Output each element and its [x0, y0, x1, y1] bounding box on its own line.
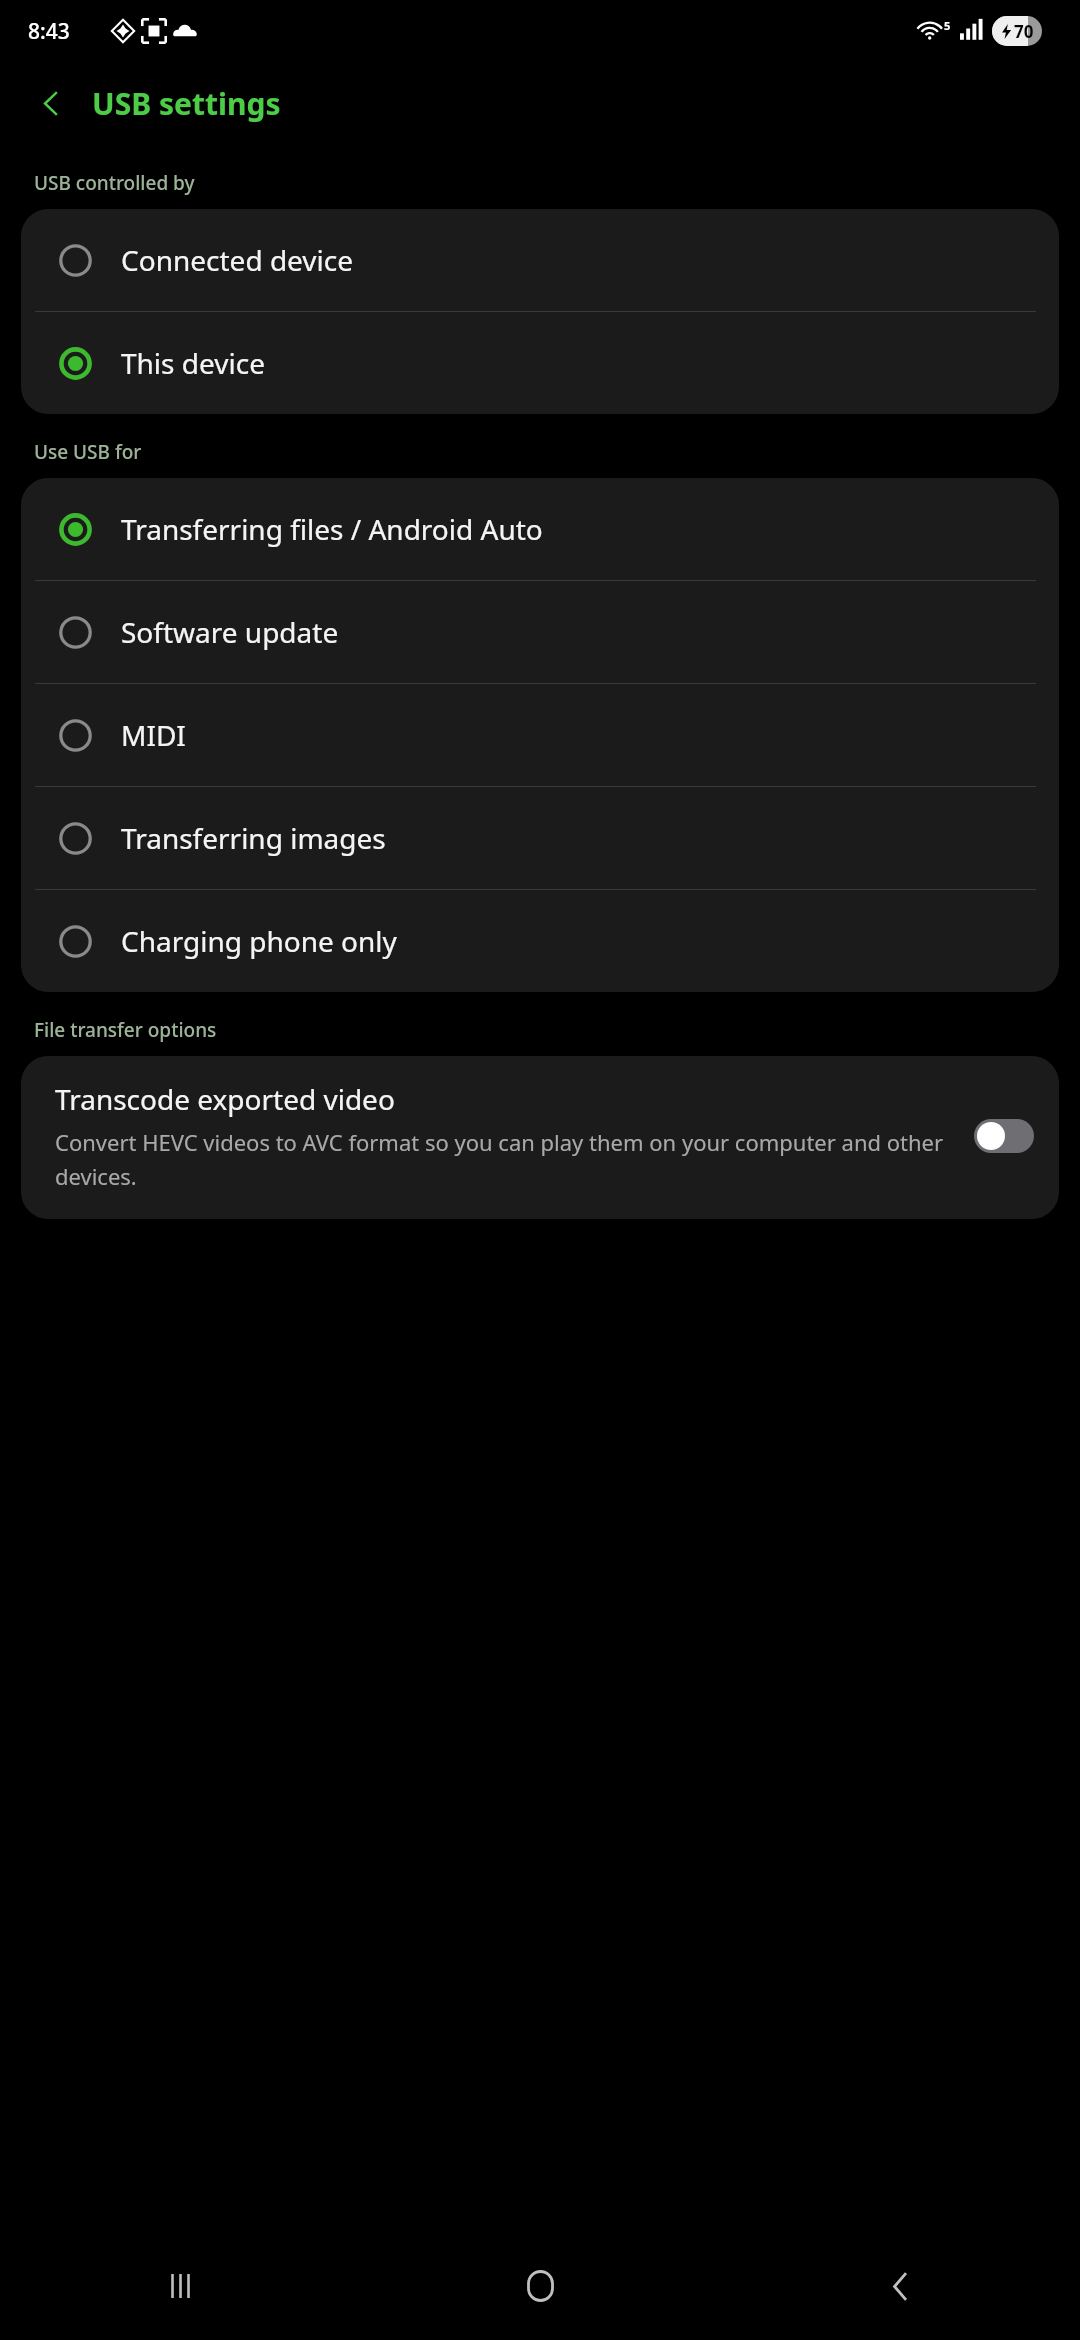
button[interactable]: Recent apps — [0, 2232, 360, 2340]
staticText: File transfer options — [34, 1017, 217, 1043]
button[interactable]: Connected device — [21, 209, 1059, 311]
staticText: Connected device — [121, 241, 354, 279]
button[interactable]: Transcode exported video — [974, 1119, 1034, 1153]
staticText: 8:43 — [28, 17, 70, 46]
staticText: USB controlled by — [34, 170, 195, 196]
staticText: Transcode exported video — [55, 1080, 395, 1118]
button[interactable]: Transcode exported video — [21, 1056, 1059, 1219]
button[interactable]: This device — [21, 312, 1059, 414]
staticText: 5 — [944, 18, 951, 33]
staticText: Charging phone only — [121, 922, 397, 960]
button[interactable]: Back — [22, 74, 80, 132]
staticText: Software update — [121, 613, 339, 651]
staticText: Transferring images — [121, 819, 386, 857]
staticText: Transferring files / Android Auto — [121, 510, 543, 548]
staticText: USB settings — [92, 83, 281, 124]
button[interactable]: Software update — [21, 581, 1059, 683]
staticText: MIDI — [121, 716, 186, 754]
button[interactable]: Home — [360, 2232, 720, 2340]
staticText: Use USB for — [34, 439, 142, 465]
button[interactable]: MIDI — [21, 684, 1059, 786]
button[interactable]: Charging phone only — [21, 890, 1059, 992]
staticText: Convert HEVC videos to AVC format so you… — [55, 1127, 964, 1191]
button[interactable]: Transferring images — [21, 787, 1059, 889]
button[interactable]: Back — [720, 2232, 1080, 2340]
staticText: 70 — [1014, 20, 1034, 43]
staticText: This device — [121, 344, 265, 382]
button[interactable]: Transferring files / Android Auto — [21, 478, 1059, 580]
